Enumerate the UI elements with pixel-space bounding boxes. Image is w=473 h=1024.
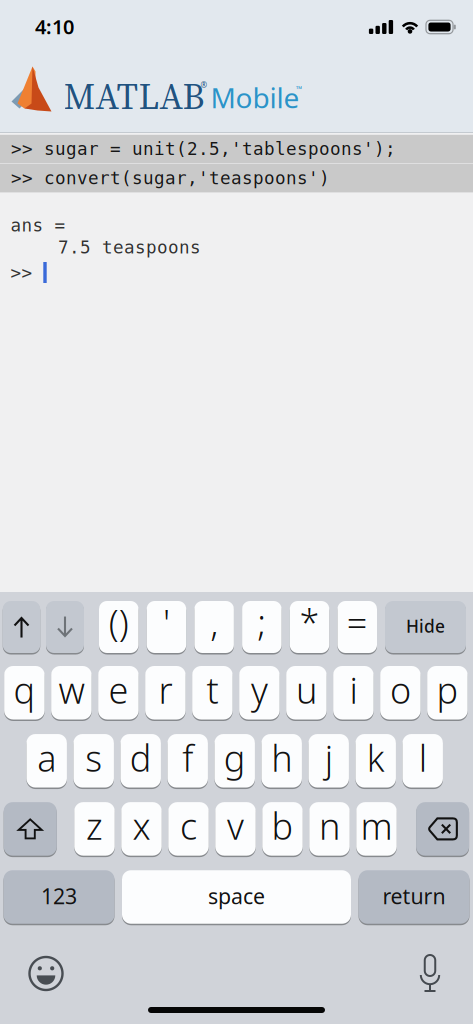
button[interactable]: n	[309, 801, 350, 857]
button[interactable]: s	[73, 733, 114, 788]
button[interactable]: =	[337, 600, 377, 654]
button[interactable]: r	[145, 665, 186, 720]
button[interactable]: p	[427, 665, 468, 720]
staticText: p	[436, 666, 458, 714]
button[interactable]: m	[356, 801, 397, 857]
staticText: 123	[41, 882, 77, 910]
staticText: MATLAB	[63, 72, 204, 121]
staticText: o	[390, 666, 411, 714]
button[interactable]: y	[239, 665, 280, 720]
button[interactable]	[28, 956, 63, 991]
button[interactable]: d	[120, 733, 161, 788]
button[interactable]: l	[402, 733, 443, 788]
staticText: q	[13, 666, 35, 714]
staticText: ®	[200, 80, 207, 90]
button[interactable]: >> sugar = unit(2.5,'tablespoons');	[0, 135, 473, 163]
button[interactable]: z	[74, 801, 115, 857]
button[interactable]: x	[121, 801, 162, 857]
button[interactable]: o	[380, 665, 421, 720]
button[interactable]: f	[167, 733, 208, 788]
staticText: e	[108, 666, 128, 714]
button[interactable]: b	[262, 801, 303, 857]
staticText: Hide	[406, 614, 445, 637]
button[interactable]: g	[214, 733, 255, 788]
staticText: g	[224, 734, 246, 782]
button[interactable]: ,	[194, 600, 234, 654]
staticText: >> sugar = unit(2.5,'tablespoons');	[11, 139, 396, 159]
staticText: Mobile	[210, 79, 299, 116]
button[interactable]: space	[122, 869, 351, 925]
button[interactable]: w	[51, 665, 92, 720]
staticText: a	[37, 734, 56, 782]
staticText: >> convert(sugar,'teaspoons')	[11, 168, 330, 188]
staticText: >>	[10, 263, 32, 283]
staticText: return	[382, 882, 445, 910]
staticText: l	[419, 734, 427, 782]
staticText: 4:10	[35, 13, 74, 40]
staticText: =	[347, 598, 368, 646]
staticText: t	[206, 666, 218, 714]
staticText: ans =	[10, 215, 65, 236]
button[interactable]: h	[261, 733, 302, 788]
staticText: b	[271, 802, 293, 850]
button[interactable]: q	[4, 665, 45, 720]
button[interactable]: t	[192, 665, 233, 720]
staticText: ,	[210, 598, 218, 646]
staticText: f	[182, 734, 193, 782]
button[interactable]: v	[215, 801, 256, 857]
staticText: d	[130, 734, 152, 782]
staticText: h	[271, 734, 292, 782]
button[interactable]: 123	[3, 869, 114, 925]
button[interactable]: k	[355, 733, 396, 788]
staticText: x	[132, 802, 150, 850]
button[interactable]: *	[290, 600, 329, 654]
button[interactable]: Hide	[385, 600, 466, 654]
staticText: j	[325, 734, 333, 782]
button[interactable]: ;	[242, 600, 282, 654]
staticText: k	[367, 734, 385, 782]
button[interactable]: a	[26, 733, 67, 788]
button[interactable]: '	[147, 600, 186, 654]
staticText: 7.5 teaspoons	[58, 237, 201, 258]
button[interactable]: return	[358, 869, 469, 925]
staticText: v	[227, 802, 244, 850]
button[interactable]: i	[333, 665, 374, 720]
button[interactable]: >> convert(sugar,'teaspoons')	[0, 164, 473, 192]
button[interactable]	[416, 801, 469, 857]
staticText: i	[349, 666, 357, 714]
staticText: u	[296, 666, 317, 714]
button[interactable]: u	[286, 665, 327, 720]
staticText: n	[319, 802, 340, 850]
button[interactable]: j	[308, 733, 349, 788]
staticText: z	[86, 802, 103, 850]
staticText: s	[85, 734, 102, 782]
button[interactable]	[46, 600, 84, 654]
button[interactable]	[3, 600, 40, 654]
button[interactable]	[419, 954, 441, 994]
staticText: '	[163, 598, 170, 646]
button[interactable]	[4, 801, 57, 857]
staticText: ()	[109, 598, 129, 646]
staticText: ™	[296, 84, 302, 94]
staticText: m	[360, 802, 392, 850]
button[interactable]: e	[98, 665, 139, 720]
button[interactable]: ()	[99, 600, 138, 654]
staticText: ;	[257, 598, 266, 646]
staticText: y	[251, 666, 268, 714]
staticText: c	[180, 802, 197, 850]
staticText: *	[300, 598, 320, 646]
staticText: w	[58, 666, 84, 714]
staticText: r	[158, 666, 172, 714]
button[interactable]: c	[168, 801, 209, 857]
staticText: space	[208, 882, 265, 910]
